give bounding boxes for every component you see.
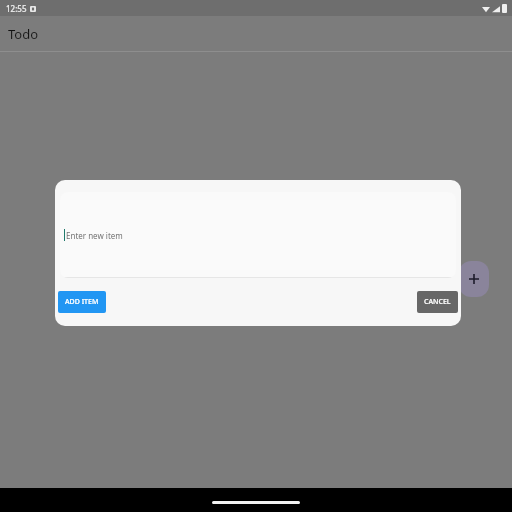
button[interactable]: Enter new item	[60, 192, 456, 278]
button[interactable]: ADD ITEM	[58, 291, 106, 313]
button[interactable]: Add item	[459, 261, 489, 297]
staticText: ADD ITEM	[65, 297, 99, 307]
staticText: 12:55	[6, 3, 27, 14]
staticText: CANCEL	[424, 297, 451, 307]
staticText: Enter new item	[66, 230, 123, 241]
staticText: Todo	[8, 25, 39, 43]
button[interactable]: CANCEL	[417, 291, 458, 313]
